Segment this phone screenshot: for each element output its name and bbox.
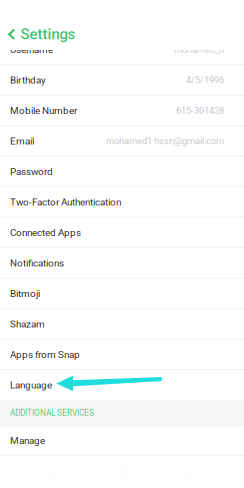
staticText: mohamed1 hssn@gmail.com bbox=[106, 136, 224, 146]
staticText: Two-Factor Authentication bbox=[10, 196, 121, 208]
button[interactable]: Bitmoji bbox=[0, 279, 244, 308]
staticText: Settings bbox=[20, 25, 75, 43]
staticText: mohamed_h bbox=[174, 44, 224, 55]
staticText: Birthday bbox=[10, 74, 46, 86]
button[interactable]: Apps from Snap bbox=[0, 340, 244, 369]
staticText: Apps from Snap bbox=[10, 349, 80, 360]
staticText: Manage bbox=[10, 435, 45, 446]
staticText: Bitmoji bbox=[10, 288, 40, 299]
staticText: 615-301428 bbox=[176, 105, 224, 116]
button[interactable]: Password bbox=[0, 157, 244, 186]
staticText: Email bbox=[10, 135, 34, 147]
button[interactable]: Notifications bbox=[0, 248, 244, 278]
staticText: ADDITIONAL SERVICES bbox=[10, 408, 94, 418]
button[interactable]: Two-Factor Authentication bbox=[0, 187, 244, 217]
button[interactable]: Email bbox=[0, 126, 244, 156]
staticText: Language bbox=[10, 379, 52, 391]
staticText: Shazam bbox=[10, 318, 45, 330]
staticText: 4/5/1996 bbox=[186, 75, 224, 85]
button[interactable]: Mobile Number bbox=[0, 96, 244, 125]
button[interactable]: Settings bbox=[0, 0, 83, 47]
button[interactable]: Birthday bbox=[0, 65, 244, 95]
button[interactable]: Manage bbox=[0, 426, 244, 455]
staticText: Username bbox=[10, 44, 53, 55]
staticText: Connected Apps bbox=[10, 227, 81, 238]
staticText: Notifications bbox=[10, 257, 64, 269]
staticText: Mobile Number bbox=[10, 105, 77, 116]
button[interactable]: Username bbox=[0, 35, 244, 64]
button[interactable]: Language bbox=[0, 370, 244, 400]
button[interactable]: Connected Apps bbox=[0, 218, 244, 247]
staticText: Password bbox=[10, 166, 53, 177]
button[interactable]: Shazam bbox=[0, 309, 244, 339]
